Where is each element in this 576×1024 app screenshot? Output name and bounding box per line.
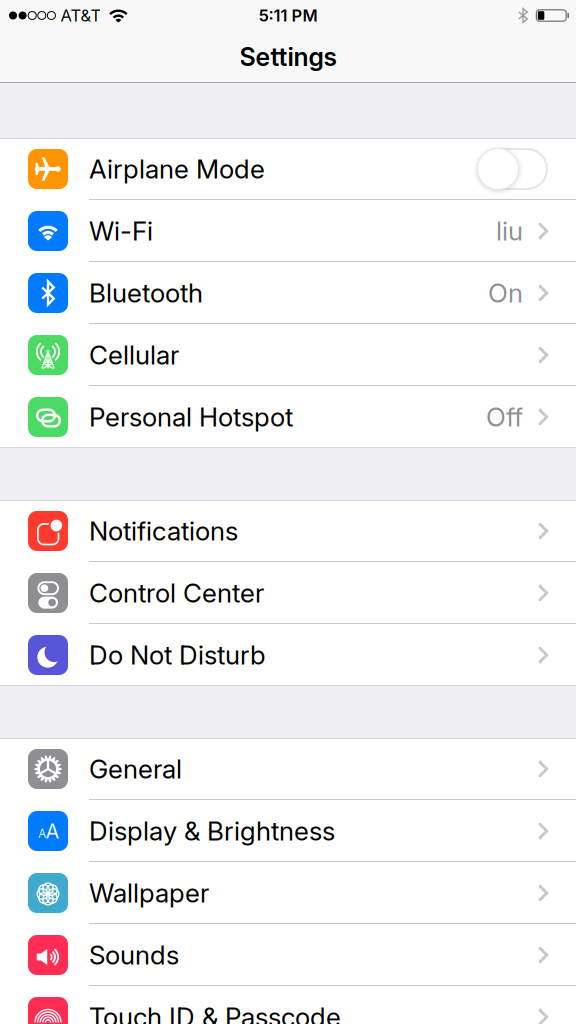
staticText: Wi-Fi (89, 215, 153, 247)
staticText: Do Not Disturb (89, 639, 266, 671)
staticText: liu (496, 215, 523, 247)
button[interactable]: Sounds (0, 924, 576, 986)
staticText: 5:11 PM (258, 5, 317, 25)
staticText: Cellular (89, 339, 179, 371)
staticText: A (38, 827, 46, 840)
button[interactable]: Airplane Mode (477, 148, 548, 190)
button[interactable]: Do Not Disturb (0, 624, 576, 686)
button[interactable]: Wi-Fi (0, 200, 576, 262)
staticText: A (45, 819, 59, 843)
staticText: Notifications (89, 515, 238, 547)
button[interactable]: Wallpaper (0, 862, 576, 924)
button[interactable]: Control Center (0, 562, 576, 624)
staticText: Airplane Mode (89, 153, 265, 185)
staticText: Bluetooth (89, 277, 203, 309)
button[interactable]: General (0, 738, 576, 800)
button[interactable]: Personal Hotspot (0, 386, 576, 448)
button[interactable]: Bluetooth (0, 262, 576, 324)
staticText: Personal Hotspot (89, 401, 293, 433)
staticText: Off (486, 401, 523, 433)
staticText: Settings (239, 42, 336, 72)
staticText: Sounds (89, 939, 179, 971)
staticText: Display & Brightness (89, 815, 335, 847)
button[interactable]: A (0, 800, 576, 862)
staticText: Touch ID & Passcode (89, 1001, 341, 1024)
staticText: AT&T (60, 5, 101, 25)
staticText: On (488, 277, 523, 309)
button[interactable]: Notifications (0, 500, 576, 562)
staticText: Control Center (89, 577, 264, 609)
button[interactable]: Touch ID & Passcode (0, 986, 576, 1024)
staticText: General (89, 753, 182, 785)
button[interactable]: Cellular (0, 324, 576, 386)
staticText: Wallpaper (89, 877, 209, 909)
